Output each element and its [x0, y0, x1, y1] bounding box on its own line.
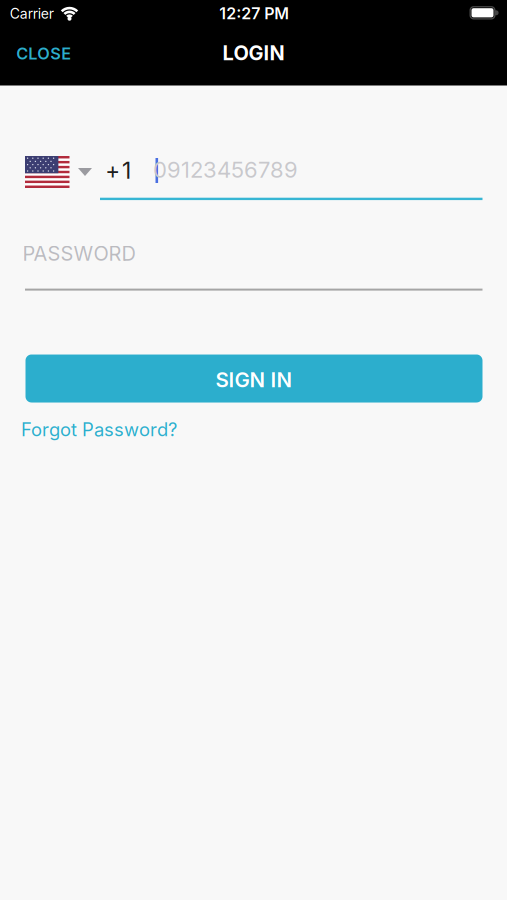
button[interactable]: CLOSE [16, 44, 71, 64]
staticText: 1 [122, 156, 131, 184]
staticText: + [105, 157, 120, 184]
staticText: 12:27 PM [219, 4, 289, 23]
staticText: 09123456789 [153, 156, 298, 183]
button[interactable]: Select country code [25, 156, 92, 188]
staticText: CLOSE [16, 44, 71, 64]
staticText: LOGIN [223, 41, 285, 65]
button[interactable]: SIGN IN [25, 354, 482, 402]
staticText: PASSWORD [22, 241, 135, 265]
staticText: SIGN IN [215, 367, 292, 392]
staticText: Forgot Password? [21, 418, 177, 441]
button[interactable]: Forgot Password? [21, 418, 177, 441]
staticText: Carrier [10, 5, 54, 22]
